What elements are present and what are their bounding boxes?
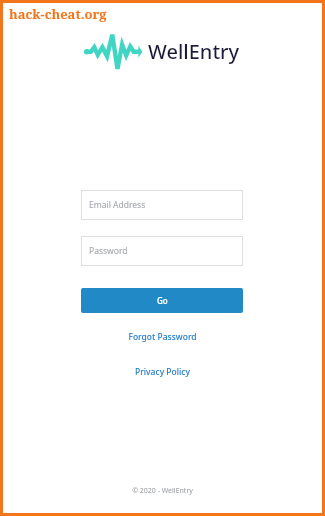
- staticText: Go: [157, 295, 168, 306]
- staticText: Email Address: [89, 199, 146, 211]
- staticText: Password: [89, 245, 128, 257]
- staticText: WellEntry: [148, 38, 240, 65]
- staticText: Forgot Password: [128, 331, 197, 343]
- staticText: hack-cheat.org: [9, 5, 107, 23]
- button[interactable]: Password: [81, 236, 243, 266]
- staticText: © 2020 - WellEntry: [132, 486, 193, 496]
- button[interactable]: Privacy Policy: [81, 362, 243, 382]
- staticText: Privacy Policy: [135, 366, 190, 378]
- button[interactable]: Email Address: [81, 190, 243, 220]
- button[interactable]: Forgot Password: [81, 327, 243, 347]
- button[interactable]: Go: [81, 288, 243, 313]
